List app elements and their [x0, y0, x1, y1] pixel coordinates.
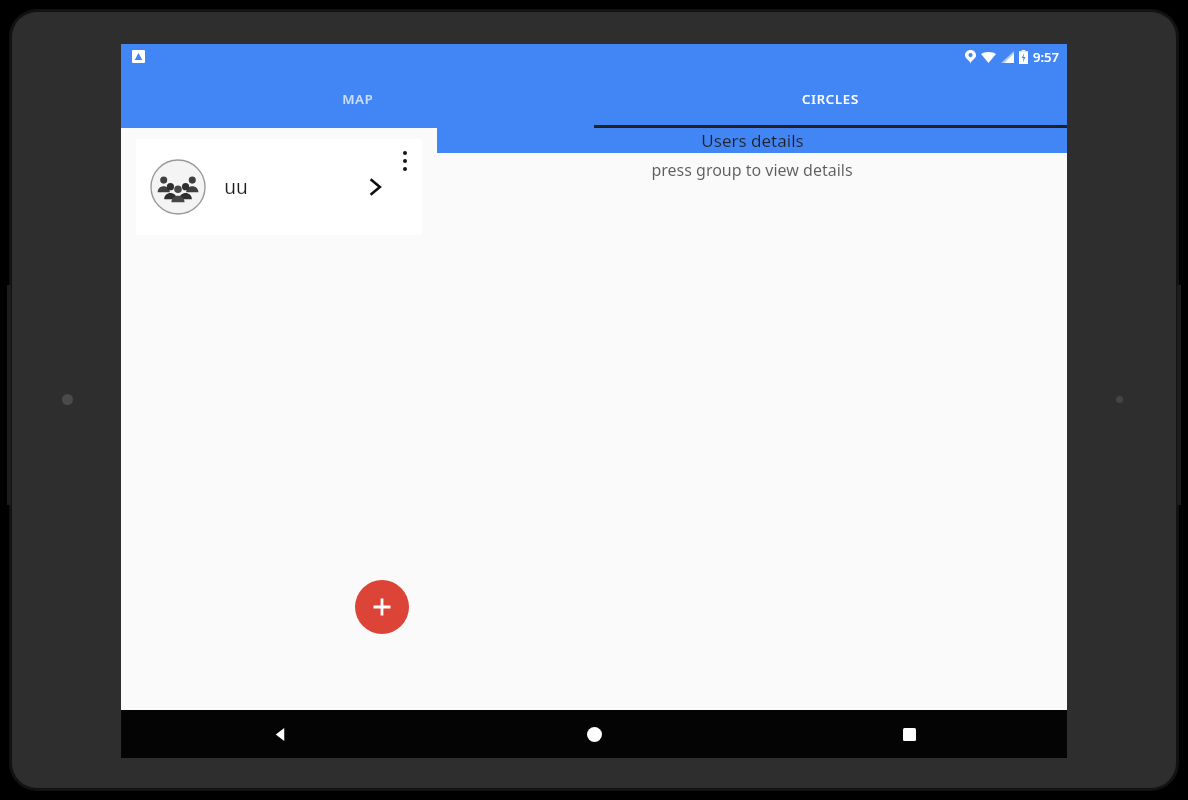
button[interactable]: Recent apps: [752, 710, 1067, 758]
button[interactable]: Home: [437, 710, 752, 758]
button[interactable]: uu: [136, 139, 422, 235]
staticText: uu: [224, 174, 248, 200]
staticText: MAP: [342, 90, 374, 108]
button[interactable]: More options: [388, 139, 422, 183]
button[interactable]: Back: [121, 710, 437, 758]
staticText: CIRCLES: [802, 90, 859, 108]
button[interactable]: Add new circle: [355, 580, 409, 634]
staticText: press group to view details: [651, 159, 853, 181]
staticText: Users details: [701, 129, 804, 152]
button[interactable]: CIRCLES: [594, 70, 1067, 128]
button[interactable]: MAP: [121, 70, 594, 128]
staticText: 9:57: [1033, 48, 1059, 66]
